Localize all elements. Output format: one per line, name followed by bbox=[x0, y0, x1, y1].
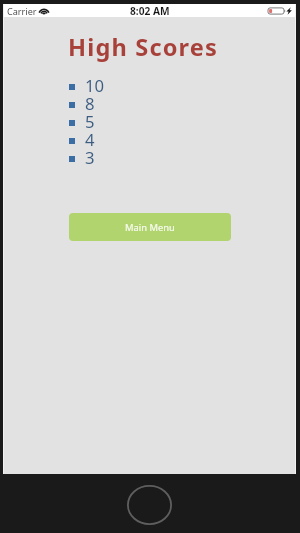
staticText: 8 bbox=[85, 92, 95, 110]
button[interactable]: Main Menu bbox=[69, 213, 231, 241]
staticText: 8:02 AM bbox=[130, 4, 170, 17]
staticText: High Scores bbox=[68, 31, 219, 63]
staticText: 3 bbox=[85, 146, 95, 164]
button[interactable]: Home bbox=[127, 485, 172, 525]
staticText: 10 bbox=[85, 74, 105, 92]
staticText: Carrier bbox=[7, 5, 37, 17]
staticText: Main Menu bbox=[125, 221, 175, 234]
staticText: 5 bbox=[85, 110, 95, 128]
staticText: 4 bbox=[85, 128, 95, 146]
